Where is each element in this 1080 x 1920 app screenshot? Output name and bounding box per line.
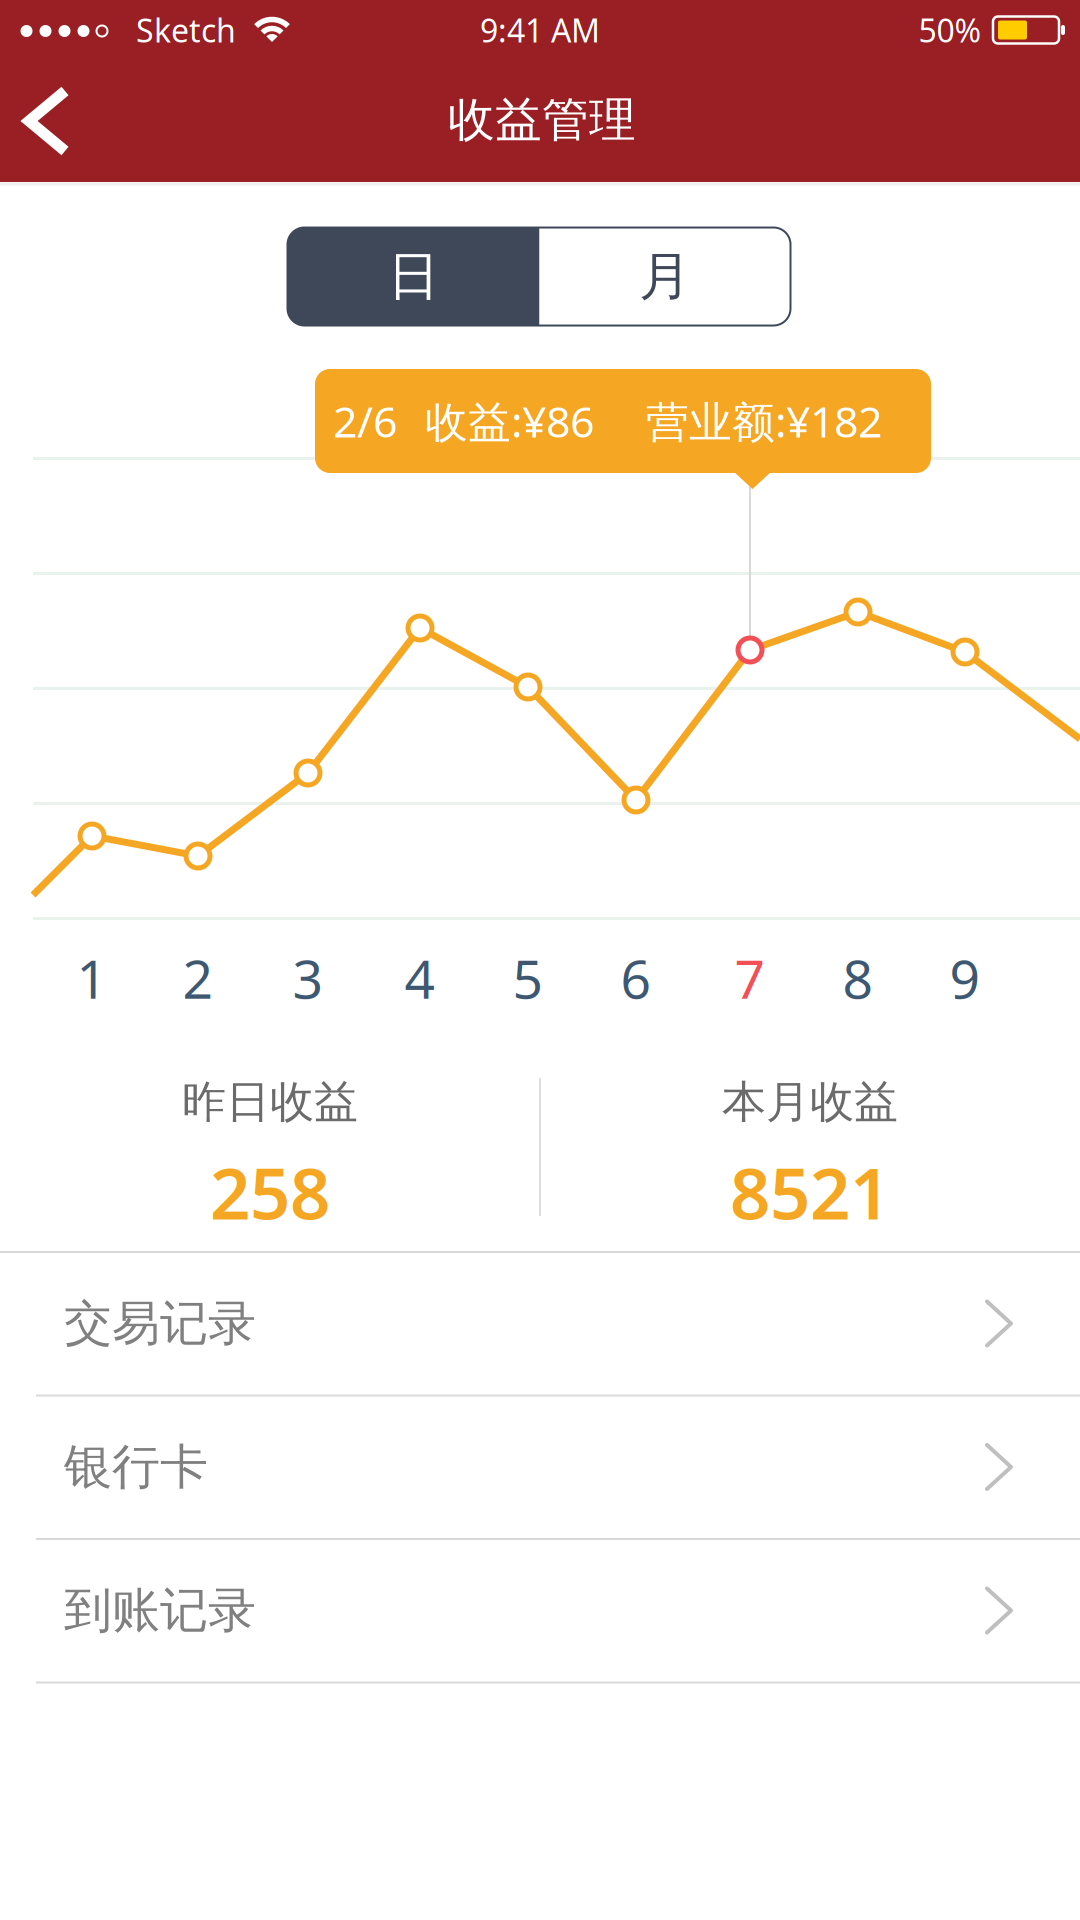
staticText: 收益管理	[448, 91, 636, 149]
staticText: 收益:¥86	[425, 393, 594, 449]
staticText: 5	[512, 943, 543, 1013]
staticText: 4	[404, 943, 435, 1013]
staticText: 258	[210, 1145, 330, 1239]
button[interactable]: 到账记录	[0, 1539, 1080, 1681]
staticText: 8	[842, 943, 873, 1013]
button[interactable]: 月	[539, 227, 790, 325]
staticText: 9	[949, 943, 980, 1013]
staticText: 到账记录	[64, 1581, 256, 1640]
button[interactable]: 交易记录	[0, 1252, 1080, 1394]
staticText: Sketch	[136, 9, 236, 51]
staticText: 日	[387, 245, 439, 308]
staticText: 6	[620, 943, 651, 1013]
staticText: 8521	[730, 1145, 890, 1239]
button[interactable]: 银行卡	[0, 1396, 1080, 1538]
staticText: 月	[639, 245, 691, 308]
staticText: 交易记录	[64, 1294, 256, 1353]
staticText: 9:41 AM	[480, 9, 600, 51]
staticText: 银行卡	[64, 1437, 208, 1496]
staticText: 2	[182, 943, 213, 1013]
staticText: 昨日收益	[182, 1075, 358, 1129]
button[interactable]: Back	[23, 86, 95, 156]
staticText: 3	[292, 943, 323, 1013]
staticText: 2/6	[333, 393, 397, 449]
staticText: 营业额:¥182	[646, 393, 882, 449]
staticText: 1	[76, 943, 107, 1013]
button[interactable]: 日	[287, 227, 539, 325]
staticText: 本月收益	[722, 1075, 898, 1129]
staticText: 7	[734, 943, 765, 1013]
staticText: 50%	[918, 9, 981, 51]
